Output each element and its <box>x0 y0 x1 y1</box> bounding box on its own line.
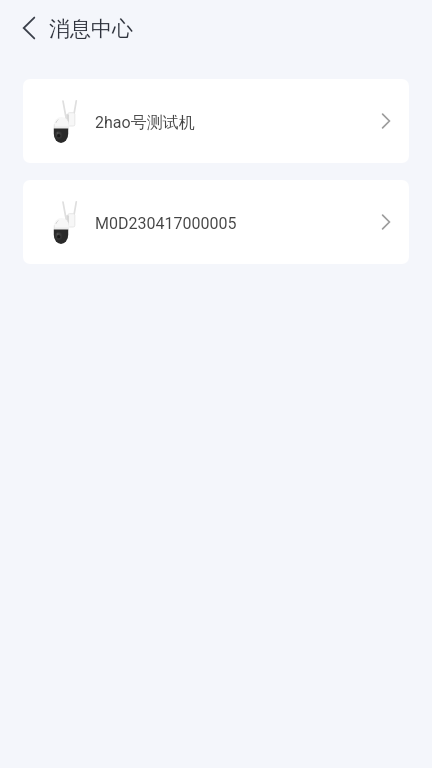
staticText: M0D230417000005 <box>95 214 237 233</box>
button[interactable]: M0D230417000005 <box>23 180 409 264</box>
staticText: 2hao号测试机 <box>95 113 195 133</box>
staticText: 消息中心 <box>49 16 133 42</box>
button[interactable]: 2hao号测试机 <box>23 79 409 163</box>
button[interactable]: Back <box>9 8 49 48</box>
